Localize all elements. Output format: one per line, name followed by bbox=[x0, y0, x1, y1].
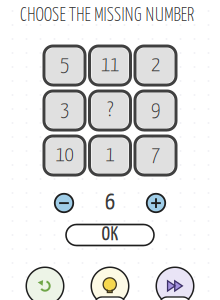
staticText: 6 bbox=[105, 192, 115, 214]
button[interactable]: Restart bbox=[24, 267, 66, 300]
staticText: 7 bbox=[151, 145, 160, 165]
button[interactable]: 1 bbox=[87, 133, 133, 178]
staticText: 3 bbox=[60, 100, 69, 120]
staticText: ? bbox=[107, 100, 113, 120]
staticText: 2 bbox=[151, 55, 160, 75]
staticText: 5 bbox=[60, 55, 69, 75]
staticText: 10 bbox=[55, 145, 73, 165]
staticText: 1 bbox=[105, 145, 114, 165]
staticText: OK bbox=[101, 226, 118, 244]
staticText: 11 bbox=[101, 55, 119, 75]
staticText: CHOOSE THE MISSING NUMBER bbox=[20, 7, 194, 25]
button[interactable]: OK bbox=[55, 223, 165, 247]
button[interactable]: 9 bbox=[133, 88, 178, 133]
button[interactable]: ? bbox=[87, 88, 133, 133]
button[interactable]: Increase bbox=[143, 190, 169, 216]
button[interactable]: 5 bbox=[42, 43, 87, 88]
button[interactable]: 2 bbox=[133, 43, 178, 88]
button[interactable]: Decrease bbox=[51, 190, 77, 216]
button[interactable]: 3 bbox=[42, 88, 87, 133]
button[interactable]: 10 bbox=[42, 133, 87, 178]
button[interactable]: 7 bbox=[133, 133, 178, 178]
staticText: 9 bbox=[151, 100, 160, 120]
button[interactable]: 11 bbox=[87, 43, 133, 88]
button[interactable]: Skip bbox=[154, 267, 196, 300]
button[interactable]: Hint bbox=[89, 267, 131, 300]
